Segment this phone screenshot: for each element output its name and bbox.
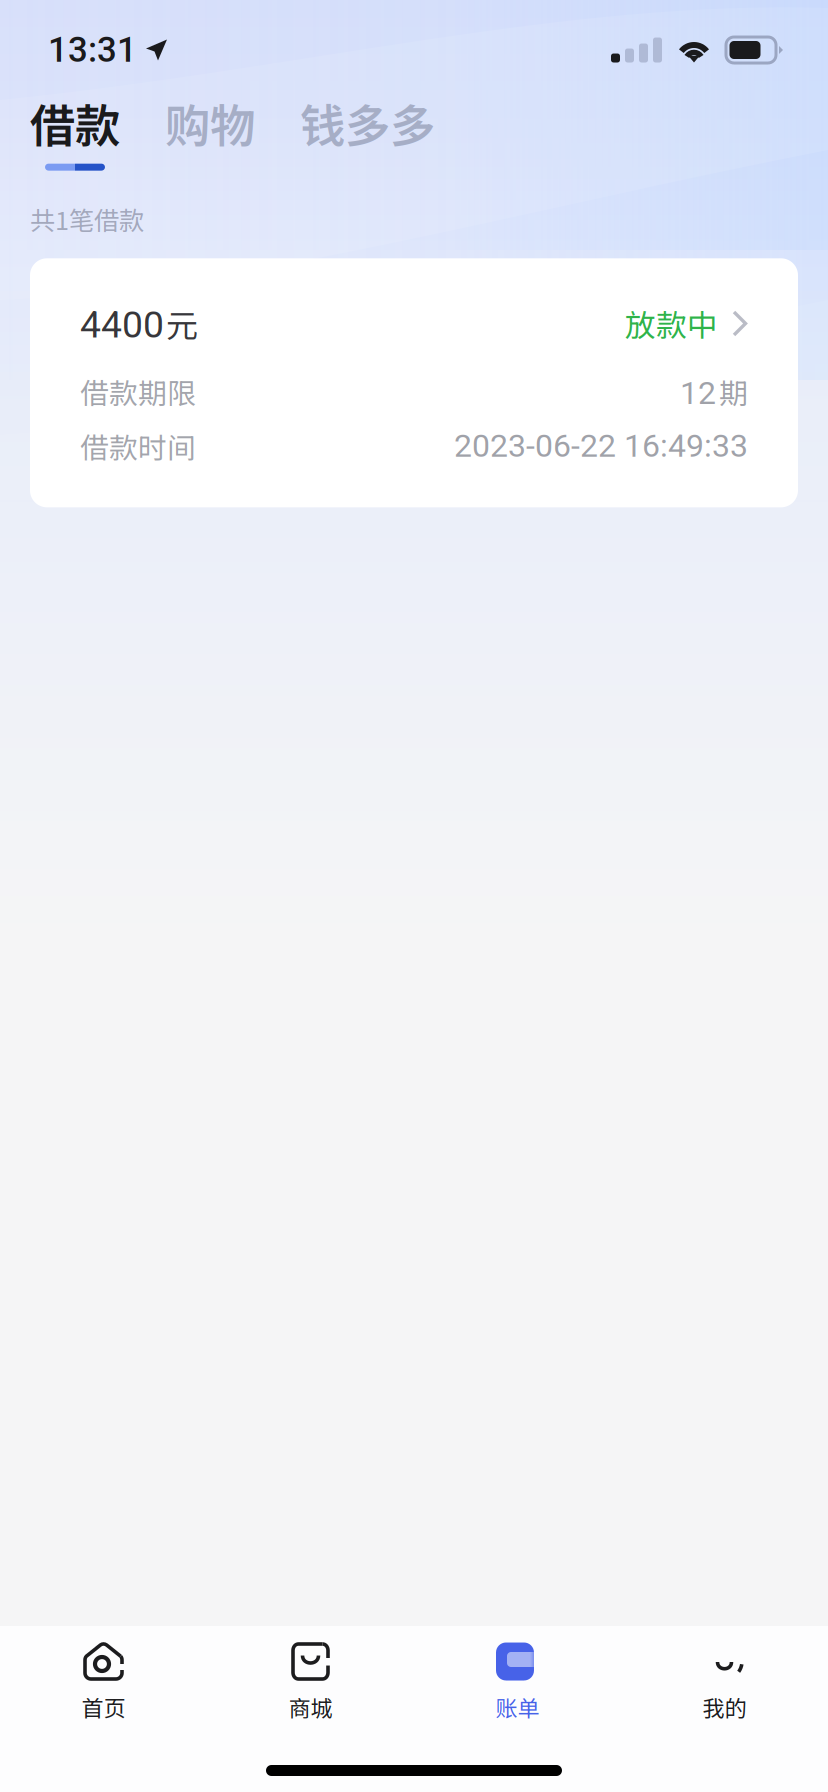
staticText: 借款时间: [80, 425, 196, 467]
button[interactable]: 商城: [207, 1626, 414, 1735]
staticText: 钱多多: [300, 90, 435, 156]
staticText: 账单: [495, 1691, 539, 1723]
staticText: 13:31: [48, 30, 137, 70]
staticText: 元: [166, 300, 198, 347]
button[interactable]: 账单: [414, 1626, 621, 1735]
staticText: 放款中: [625, 301, 718, 346]
staticText: 12: [680, 374, 716, 412]
button[interactable]: 首页: [0, 1626, 207, 1735]
button[interactable]: 借款: [30, 90, 120, 171]
button[interactable]: 购物: [165, 90, 255, 156]
staticText: 商城: [288, 1691, 332, 1723]
button[interactable]: 我的: [621, 1626, 828, 1735]
staticText: 2023-06-22 16:49:33: [454, 427, 748, 465]
staticText: 我的: [702, 1691, 746, 1723]
button[interactable]: 钱多多: [300, 90, 435, 156]
staticText: 购物: [165, 90, 255, 156]
staticText: 借款: [30, 90, 120, 156]
staticText: 借款期限: [80, 371, 196, 412]
staticText: 首页: [81, 1691, 125, 1723]
staticText: 共1笔借款: [30, 201, 144, 237]
staticText: 4400: [80, 303, 164, 346]
staticText: 期: [719, 371, 748, 412]
button[interactable]: 4400: [30, 258, 798, 507]
